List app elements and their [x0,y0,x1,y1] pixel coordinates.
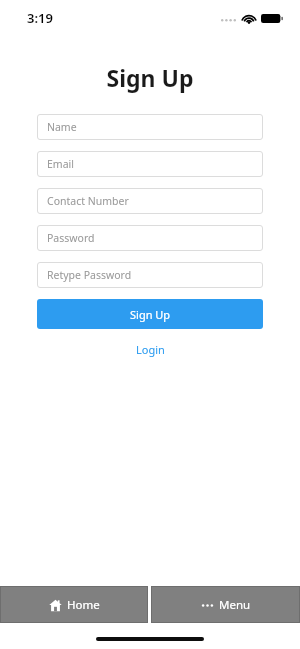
button[interactable]: Password [37,225,263,251]
button[interactable]: Home [1,587,147,622]
button[interactable]: Sign Up [37,299,263,329]
button[interactable]: Menu [152,587,299,622]
staticText: Menu [219,597,251,613]
staticText: Home [67,597,100,613]
staticText: Sign Up [0,62,300,93]
staticText: Password [47,231,95,245]
button[interactable]: Name [37,114,263,140]
staticText: Retype Password [47,268,132,282]
staticText: Login [136,342,165,357]
staticText: Name [47,120,77,134]
button[interactable]: Email [37,151,263,177]
button[interactable]: Retype Password [37,262,263,288]
button[interactable]: Login [37,342,263,357]
button[interactable]: Contact Number [37,188,263,214]
staticText: Sign Up [130,307,171,322]
staticText: Email [47,157,74,171]
staticText: Contact Number [47,194,129,208]
staticText: 3:19 [27,9,53,27]
